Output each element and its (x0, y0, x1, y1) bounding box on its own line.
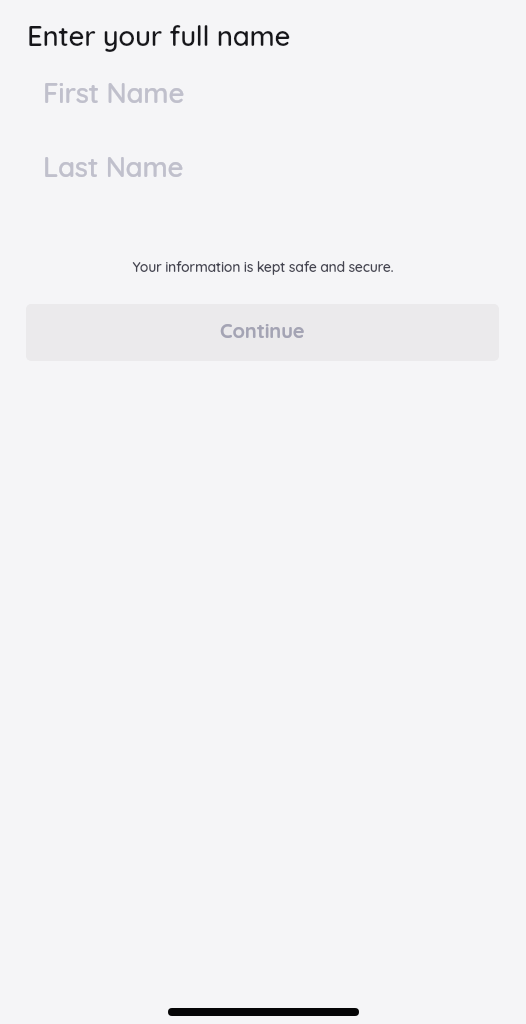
staticText: First Name (43, 75, 185, 109)
staticText: Enter your full name (27, 18, 291, 52)
staticText: Your information is kept safe and secure… (0, 258, 526, 276)
staticText: Last Name (43, 149, 184, 183)
staticText: Continue (220, 318, 305, 343)
button[interactable]: Continue (26, 304, 499, 361)
button[interactable]: First Name input (0, 64, 526, 120)
button[interactable]: Last Name input (0, 138, 526, 194)
